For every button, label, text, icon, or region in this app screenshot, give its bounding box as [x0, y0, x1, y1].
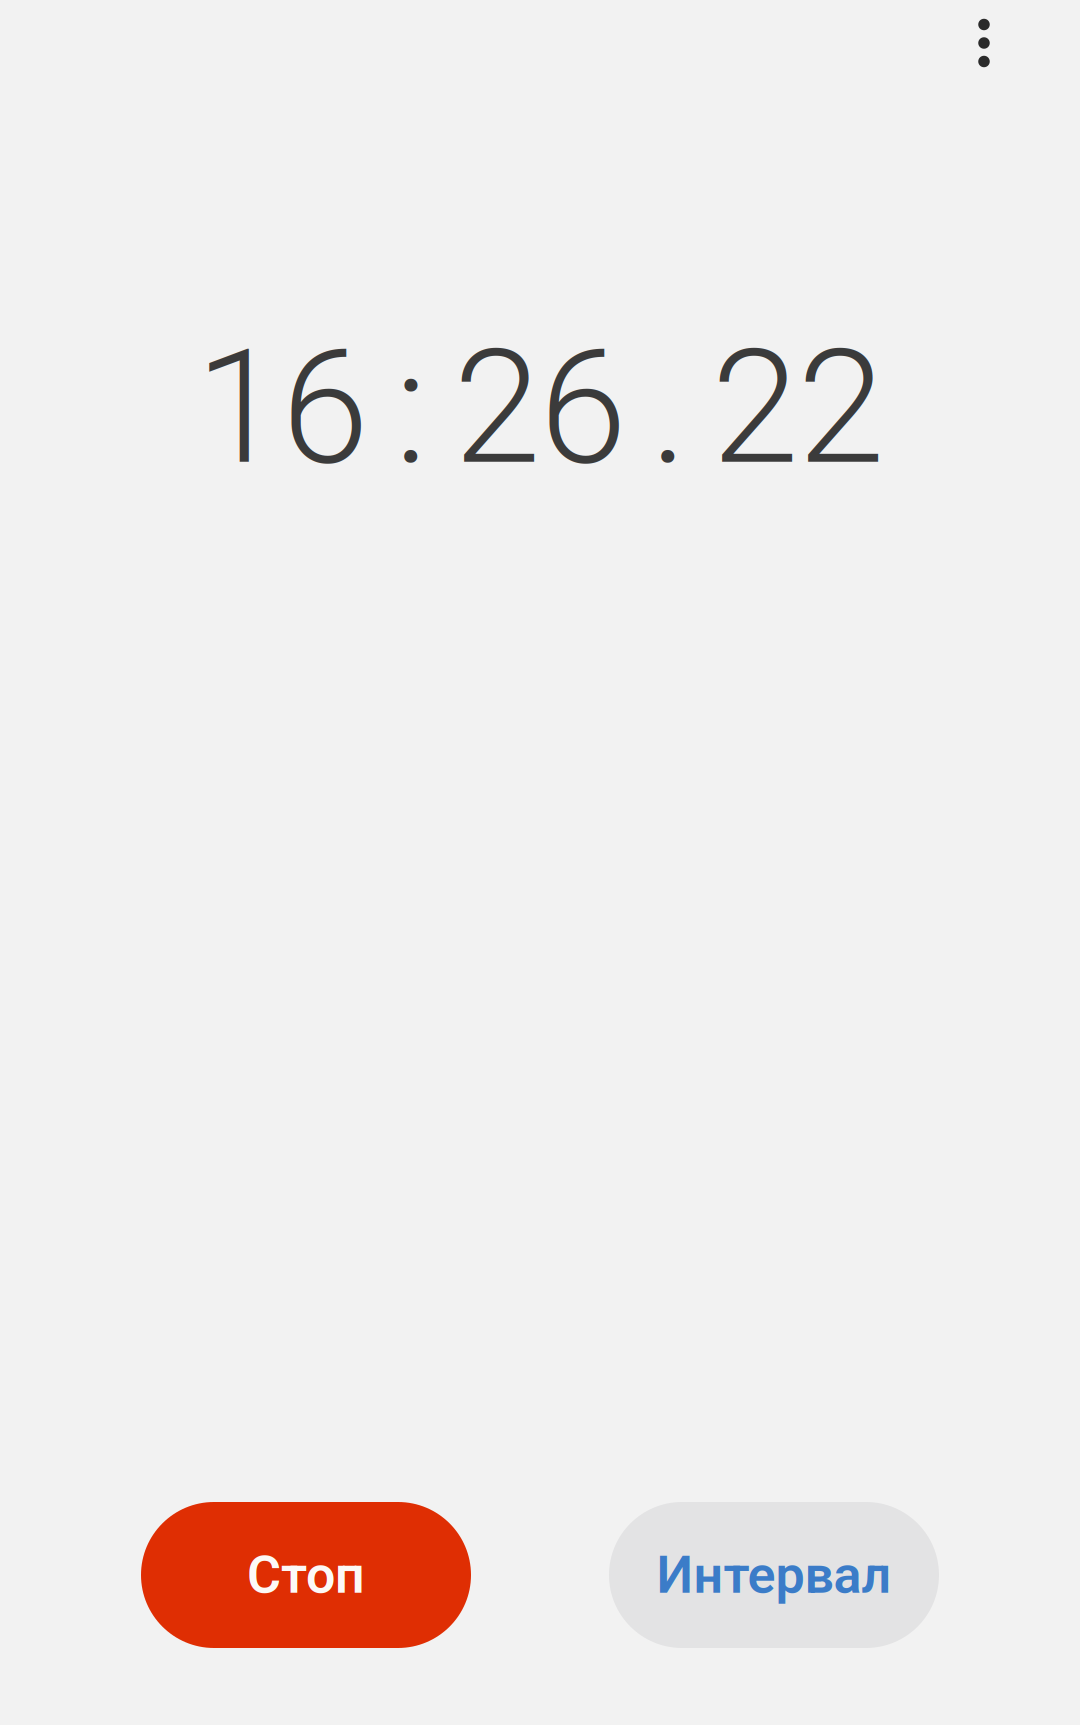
staticText: .	[650, 316, 688, 500]
button[interactable]: More options	[936, 0, 1032, 86]
staticText: 6	[281, 316, 368, 500]
staticText: :	[394, 316, 427, 500]
staticText: Интервал	[656, 1544, 891, 1605]
button[interactable]: Интервал	[609, 1502, 939, 1648]
staticText: 1	[195, 316, 282, 500]
group: 16:26.22	[196, 338, 884, 478]
staticText: 2	[797, 316, 884, 500]
staticText: 6	[539, 316, 626, 500]
staticText: 2	[711, 316, 798, 500]
staticText: Стоп	[247, 1544, 365, 1605]
button[interactable]: Стоп	[141, 1502, 471, 1648]
staticText: 2	[453, 316, 540, 500]
